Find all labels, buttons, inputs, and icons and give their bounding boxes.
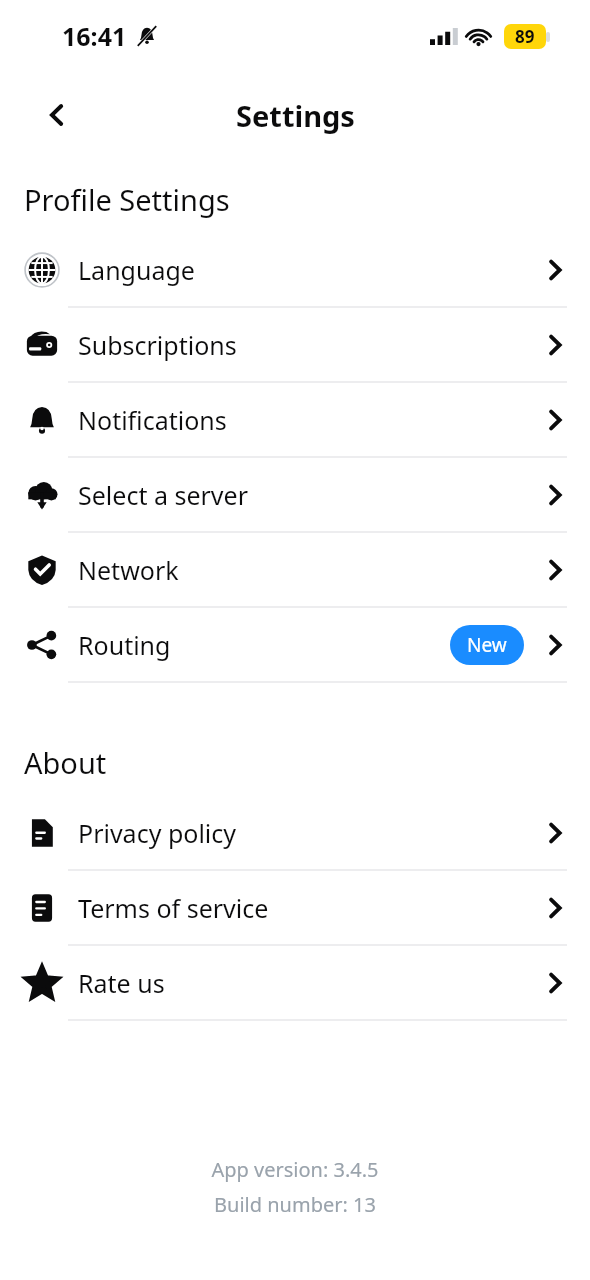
staticText: 16:41 xyxy=(62,19,127,53)
staticText: Routing xyxy=(78,628,171,662)
staticText: New xyxy=(467,632,507,658)
staticText: Privacy policy xyxy=(78,816,237,850)
staticText: Subscriptions xyxy=(78,328,237,362)
button[interactable]: Rate us xyxy=(0,946,590,1021)
staticText: Network xyxy=(78,553,179,587)
button[interactable]: Network xyxy=(0,533,590,608)
button[interactable]: Subscriptions xyxy=(0,308,590,383)
staticText: 89 xyxy=(515,25,535,48)
button[interactable]: Select a server xyxy=(0,458,590,533)
button[interactable]: Language xyxy=(0,233,590,308)
staticText: About xyxy=(24,743,107,782)
button[interactable]: Back xyxy=(22,80,92,150)
staticText: Select a server xyxy=(78,478,248,512)
button[interactable]: Notifications xyxy=(0,383,590,458)
staticText: Language xyxy=(78,253,195,287)
staticText: Settings xyxy=(236,96,355,135)
button[interactable]: Privacy policy xyxy=(0,796,590,871)
staticText: Profile Settings xyxy=(24,180,230,219)
staticText: App version: 3.4.5 xyxy=(211,1156,379,1183)
staticText: Terms of service xyxy=(78,891,269,925)
button[interactable]: Routing xyxy=(0,608,590,683)
staticText: Notifications xyxy=(78,403,227,437)
staticText: Build number: 13 xyxy=(214,1191,376,1218)
staticText: Rate us xyxy=(78,966,165,1000)
button[interactable]: Terms of service xyxy=(0,871,590,946)
